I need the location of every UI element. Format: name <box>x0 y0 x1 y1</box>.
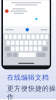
staticText: 在线编辑文档 <box>7 73 49 81</box>
staticText: 更方便快捷的操作 <box>7 84 56 100</box>
